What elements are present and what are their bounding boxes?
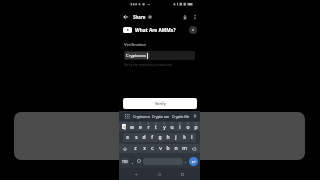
button[interactable]: Verify [123, 98, 197, 109]
button[interactable]: a [123, 133, 132, 142]
staticText: . [185, 159, 187, 164]
button[interactable]: b [164, 144, 172, 153]
button[interactable]: Backspace [188, 144, 200, 153]
button[interactable]: 0 [192, 122, 200, 131]
button[interactable]: Symbols [121, 158, 129, 165]
staticText: 4 [147, 122, 149, 126]
button[interactable]: Cryptoeco [124, 51, 195, 60]
button[interactable]: g [156, 133, 164, 142]
button[interactable]: 5 [152, 122, 160, 131]
button[interactable]: 6 [160, 122, 168, 131]
staticText: 7 [171, 122, 173, 126]
staticText: 9 [187, 122, 189, 126]
staticText: , [132, 159, 134, 164]
staticText: t [155, 124, 157, 131]
button[interactable]: More options [190, 12, 199, 21]
staticText: r [147, 124, 150, 131]
button[interactable]: k [180, 133, 188, 142]
button[interactable]: 2 [128, 122, 136, 131]
button[interactable]: Back [119, 10, 132, 23]
button[interactable]: Space [143, 158, 183, 165]
button[interactable]: l [188, 133, 196, 142]
button[interactable]: j [172, 133, 180, 142]
button[interactable]: 7 [168, 122, 176, 131]
staticText: 5 [155, 122, 157, 126]
staticText: w [130, 124, 134, 131]
staticText: b [166, 145, 170, 152]
staticText: 8 [179, 122, 181, 126]
button[interactable]: m [180, 144, 188, 153]
staticText: Crypto am [152, 114, 170, 119]
button[interactable]: x [140, 144, 148, 153]
staticText: s [135, 134, 138, 141]
staticText: ?123 [122, 160, 128, 164]
staticText: k [183, 134, 186, 141]
staticText: q [122, 124, 126, 131]
button[interactable]: v [156, 144, 164, 153]
staticText: Cryptic life [172, 114, 190, 119]
staticText: i [179, 124, 181, 131]
staticText: v [159, 145, 162, 152]
staticText: What Are AMMs? [135, 27, 176, 34]
staticText: Cryptoeco [126, 53, 147, 59]
staticText: e [139, 124, 142, 131]
button[interactable]: What Are AMMs? [119, 23, 200, 37]
staticText: n [174, 145, 178, 152]
staticText: o [186, 124, 190, 131]
staticText: f [151, 134, 153, 141]
button[interactable]: Pause [189, 26, 197, 34]
button[interactable]: 4 [144, 122, 152, 131]
button[interactable]: Recents [177, 169, 188, 180]
staticText: 6 [163, 122, 165, 126]
staticText: y [163, 124, 166, 131]
staticText: g [158, 134, 162, 141]
staticText: 2 [131, 122, 133, 126]
button[interactable]: 8 [176, 122, 184, 131]
button[interactable]: 9 [184, 122, 192, 131]
button[interactable]: n [172, 144, 180, 153]
staticText: d [142, 134, 146, 141]
button[interactable]: 3 [136, 122, 144, 131]
button[interactable]: Home [154, 169, 165, 180]
button[interactable]: Enter [189, 157, 198, 166]
staticText: Cryptoeco [133, 114, 150, 119]
staticText: x [143, 145, 146, 152]
staticText: m [182, 145, 187, 152]
staticText: h [166, 134, 170, 141]
button[interactable]: Back [131, 169, 142, 180]
staticText: Verify [155, 101, 166, 106]
staticText: Verify the video you just watched [124, 63, 172, 67]
button[interactable]: Shift [119, 144, 131, 153]
button[interactable]: f [148, 133, 156, 142]
staticText: 1 [123, 122, 125, 126]
staticText: z [134, 145, 137, 152]
staticText: a [126, 134, 129, 141]
button[interactable]: h [164, 133, 172, 142]
staticText: q [123, 124, 126, 129]
staticText: p [194, 124, 198, 131]
button[interactable]: Voice input [192, 113, 198, 119]
button[interactable]: Download [179, 11, 190, 22]
staticText: l [191, 134, 193, 141]
staticText: c [151, 145, 154, 152]
staticText: 3 [139, 122, 141, 126]
button[interactable]: Emoji [136, 158, 142, 164]
staticText: j [175, 134, 177, 141]
button[interactable]: s [132, 133, 140, 142]
staticText: u [170, 124, 174, 131]
button[interactable]: z [131, 144, 140, 153]
button[interactable]: d [140, 133, 148, 142]
button[interactable]: 1 [119, 122, 128, 131]
staticText: Verification [124, 42, 147, 48]
staticText: 0 [195, 122, 197, 126]
button[interactable]: Keyboard menu [124, 113, 130, 119]
staticText: Share [133, 14, 146, 20]
button[interactable]: c [148, 144, 156, 153]
